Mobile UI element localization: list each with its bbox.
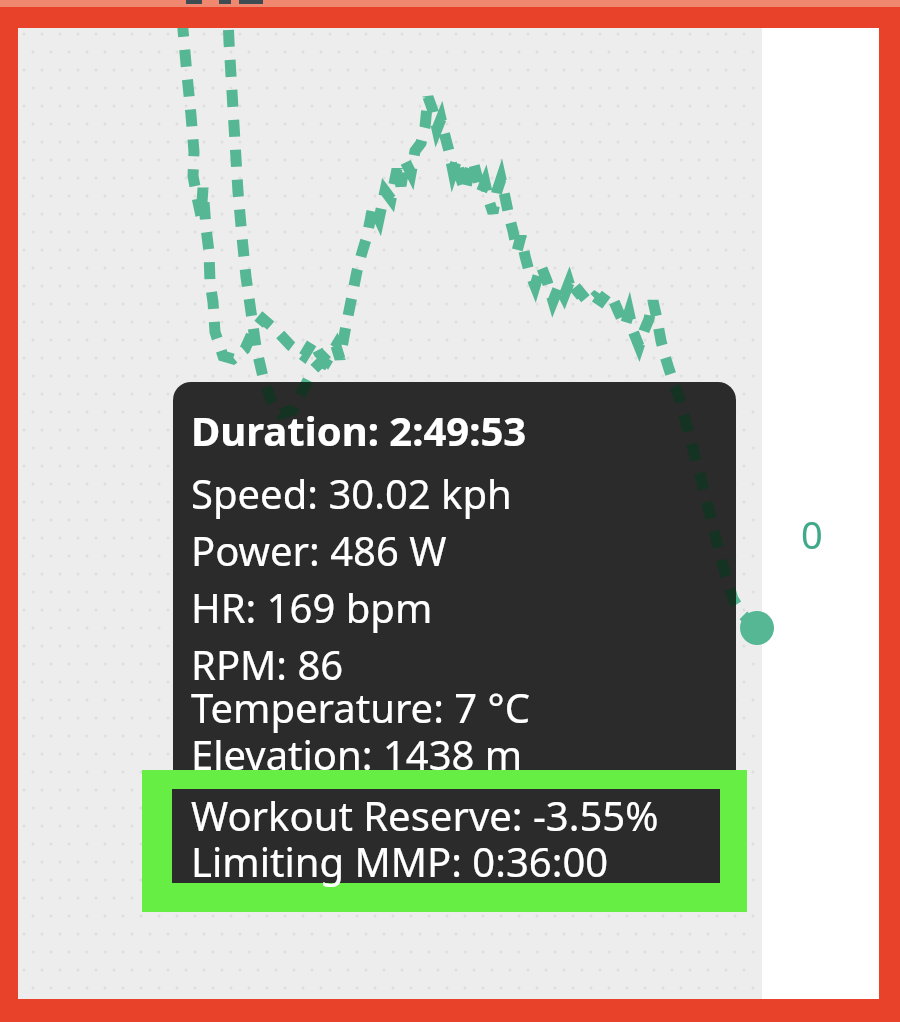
- button[interactable]: Ride analysis chart: [0, 0, 900, 1022]
